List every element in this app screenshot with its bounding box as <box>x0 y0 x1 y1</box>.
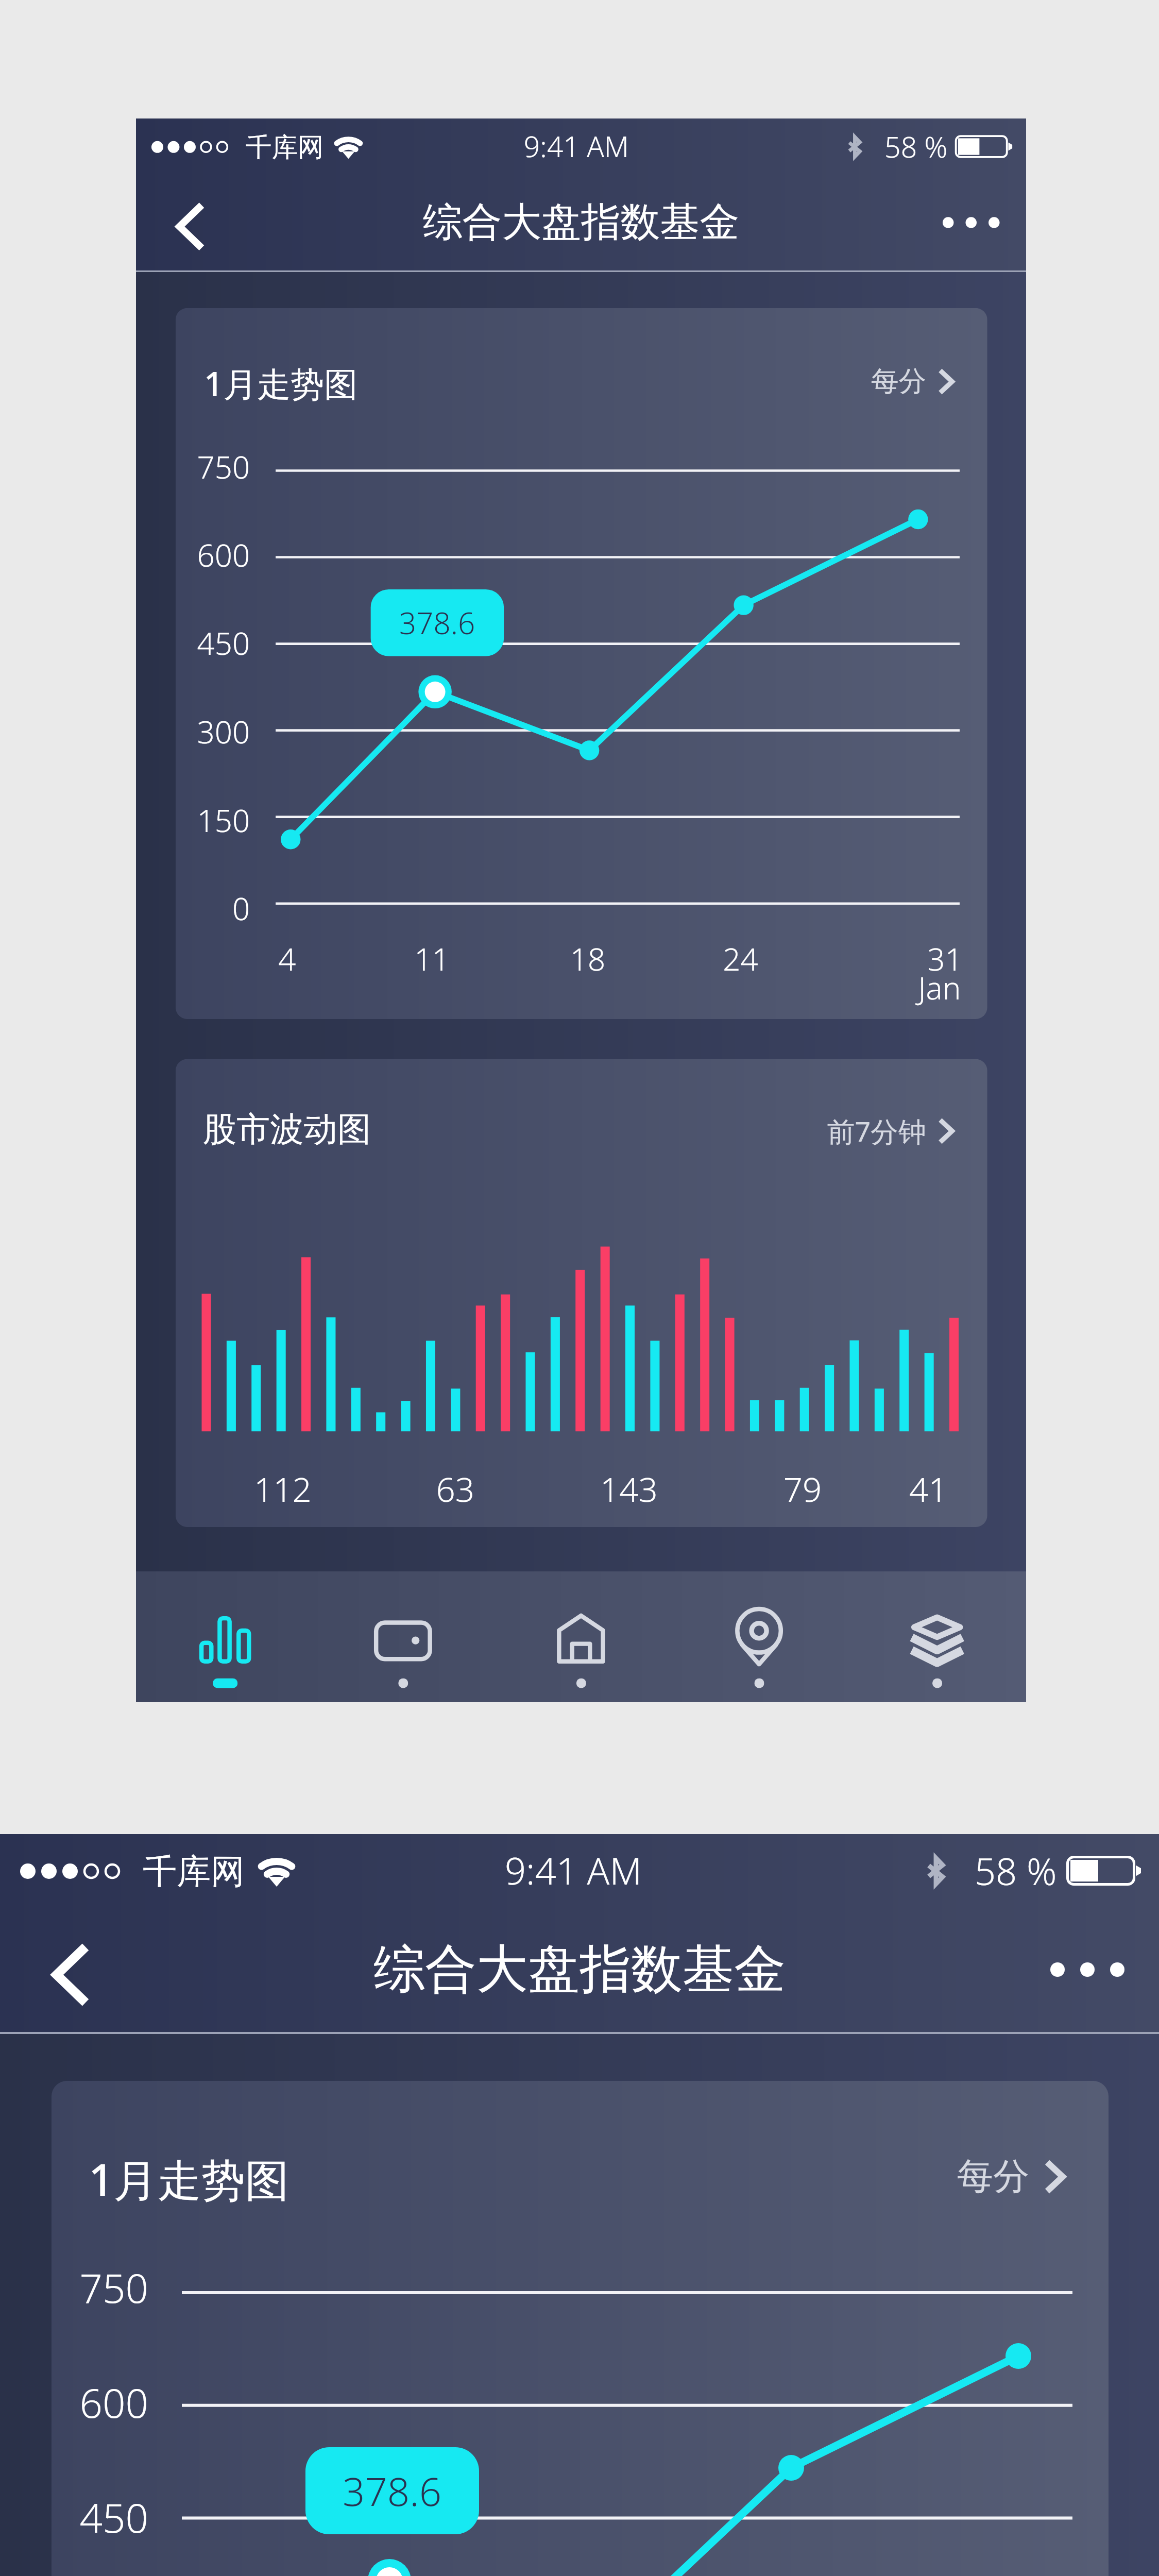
button[interactable]: 1月走势图 <box>176 308 987 1019</box>
staticText: 11 <box>373 938 491 979</box>
button[interactable]: More options <box>934 197 1009 248</box>
staticText: 31 <box>886 938 987 979</box>
staticText: 378.6 <box>343 2464 442 2518</box>
button[interactable]: Back <box>30 1934 112 2016</box>
staticText: 600 <box>176 534 250 576</box>
button[interactable]: Wallet <box>314 1571 492 1702</box>
staticText: 450 <box>176 622 250 664</box>
staticText: 143 <box>550 1466 708 1512</box>
staticText: 41 <box>849 1466 987 1512</box>
staticText: 9:41 AM <box>505 1845 642 1895</box>
staticText: 综合大盘指数基金 <box>373 1937 786 2002</box>
button[interactable]: 1月走势图 <box>52 2081 1109 2576</box>
staticText: 63 <box>376 1466 534 1512</box>
staticText: 1月走势图 <box>204 360 358 406</box>
button[interactable]: Home <box>492 1571 670 1702</box>
staticText: 千库网 <box>143 1850 245 1893</box>
staticText: 每分 <box>957 2154 1029 2199</box>
staticText: 750 <box>52 2260 148 2315</box>
staticText: 150 <box>176 799 250 841</box>
staticText: 1月走势图 <box>89 2149 289 2209</box>
staticText: 79 <box>723 1466 882 1512</box>
button[interactable]: Statistics <box>136 1571 314 1702</box>
staticText: 前7分钟 <box>827 1112 926 1150</box>
button[interactable]: Location <box>670 1571 848 1702</box>
staticText: 0 <box>176 887 250 929</box>
staticText: 750 <box>176 446 250 488</box>
staticText: 18 <box>528 938 647 979</box>
button[interactable]: Back <box>159 195 222 258</box>
staticText: Jan <box>842 967 961 1009</box>
staticText: 每分 <box>871 364 926 399</box>
staticText: 4 <box>228 938 346 979</box>
staticText: 58 % <box>975 1845 1057 1896</box>
staticText: 112 <box>204 1466 362 1512</box>
staticText: 24 <box>681 938 800 979</box>
staticText: 股市波动图 <box>203 1108 371 1150</box>
staticText: 综合大盘指数基金 <box>423 198 739 248</box>
staticText: 9:41 AM <box>524 127 629 166</box>
staticText: 千库网 <box>246 131 324 164</box>
staticText: 600 <box>52 2375 148 2430</box>
button[interactable]: Layers <box>848 1571 1026 1702</box>
staticText: 378.6 <box>399 602 475 644</box>
staticText: 300 <box>176 711 250 753</box>
staticText: 450 <box>52 2490 148 2545</box>
button[interactable]: 股市波动图 <box>176 1059 987 1527</box>
staticText: 58 % <box>884 127 948 166</box>
button[interactable]: More options <box>1038 1936 1136 2003</box>
